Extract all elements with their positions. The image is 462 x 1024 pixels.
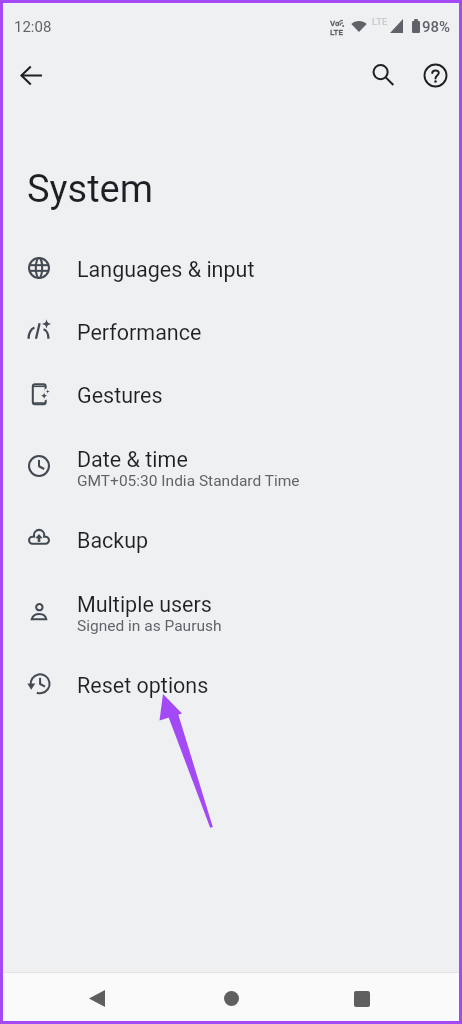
staticText: Vo	[330, 19, 340, 28]
button[interactable]: Recents	[336, 973, 388, 1024]
staticText: Backup	[77, 528, 149, 553]
staticText: Reset options	[77, 673, 209, 698]
staticText: Languages & input	[77, 257, 255, 282]
staticText: System	[27, 167, 154, 212]
button[interactable]: Home	[205, 973, 257, 1024]
staticText: Multiple users	[77, 592, 212, 617]
staticText: LTE	[330, 28, 343, 37]
staticText: 98%	[422, 18, 451, 36]
button[interactable]: Back	[9, 53, 53, 97]
button[interactable]: Back	[71, 973, 123, 1024]
staticText: 12:08	[14, 18, 52, 36]
button[interactable]: Multiple users	[0, 572, 462, 654]
staticText: Gestures	[77, 383, 163, 408]
button[interactable]: Gestures	[0, 364, 462, 427]
button[interactable]: Reset options	[0, 654, 462, 717]
staticText: Signed in as Paurush	[77, 617, 222, 635]
staticText: GMT+05:30 India Standard Time	[77, 472, 300, 490]
button[interactable]: Search	[361, 53, 405, 97]
button[interactable]: Help	[413, 53, 457, 97]
button[interactable]: Date & time	[0, 427, 462, 509]
button[interactable]: Performance	[0, 301, 462, 364]
staticText: Date & time	[77, 447, 188, 472]
button[interactable]: Backup	[0, 509, 462, 572]
button[interactable]: Languages & input	[0, 238, 462, 301]
staticText: LTE	[372, 16, 388, 27]
staticText: Performance	[77, 320, 202, 345]
